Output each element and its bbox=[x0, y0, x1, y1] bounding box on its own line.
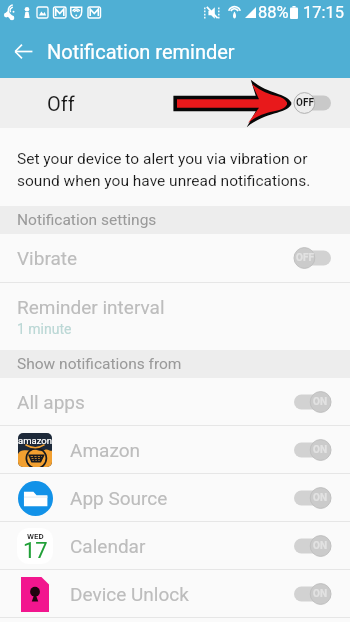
button[interactable]: Off bbox=[294, 247, 331, 269]
staticText: ON bbox=[309, 492, 331, 504]
button[interactable]: Navigate up bbox=[0, 25, 47, 78]
button[interactable]: WED bbox=[0, 522, 350, 569]
staticText: Off bbox=[47, 92, 75, 115]
button[interactable]: Off bbox=[294, 92, 331, 114]
staticText: 17 bbox=[23, 538, 48, 561]
button[interactable]: On bbox=[294, 487, 331, 509]
staticText: WED bbox=[27, 532, 44, 541]
staticText: Calendar bbox=[70, 535, 146, 557]
staticText: amazon bbox=[18, 435, 52, 446]
button[interactable]: amazon bbox=[0, 426, 350, 473]
button[interactable]: All apps bbox=[0, 378, 350, 425]
staticText: ON bbox=[309, 396, 331, 408]
staticText: OFF bbox=[294, 97, 316, 109]
staticText: 88% bbox=[258, 3, 289, 22]
staticText: Show notifications from bbox=[17, 355, 182, 373]
staticText: App Source bbox=[70, 487, 168, 509]
staticText: Reminder interval bbox=[17, 296, 165, 318]
staticText: Device Unlock bbox=[70, 583, 189, 605]
staticText: Vibrate bbox=[17, 247, 78, 269]
button[interactable]: Device Unlock bbox=[0, 570, 350, 617]
staticText: Notification reminder bbox=[47, 40, 235, 63]
staticText: Set your device to alert you via vibrati… bbox=[17, 150, 326, 190]
staticText: 1 minute bbox=[17, 321, 72, 337]
staticText: All apps bbox=[17, 391, 85, 413]
button[interactable]: Reminder interval bbox=[0, 283, 350, 350]
button[interactable]: Off bbox=[0, 78, 350, 128]
staticText: Amazon bbox=[70, 439, 140, 461]
staticText: ON bbox=[309, 540, 331, 552]
button[interactable]: On bbox=[294, 439, 331, 461]
button[interactable]: On bbox=[294, 583, 331, 605]
staticText: ON bbox=[309, 444, 331, 456]
button[interactable]: Vibrate bbox=[0, 234, 350, 282]
staticText: 17:15 bbox=[303, 3, 345, 22]
button[interactable]: App Source bbox=[0, 474, 350, 521]
button[interactable]: On bbox=[294, 535, 331, 557]
staticText: ON bbox=[309, 588, 331, 600]
button[interactable]: On bbox=[294, 391, 331, 413]
staticText: Notification settings bbox=[17, 211, 157, 229]
staticText: OFF bbox=[294, 252, 316, 264]
